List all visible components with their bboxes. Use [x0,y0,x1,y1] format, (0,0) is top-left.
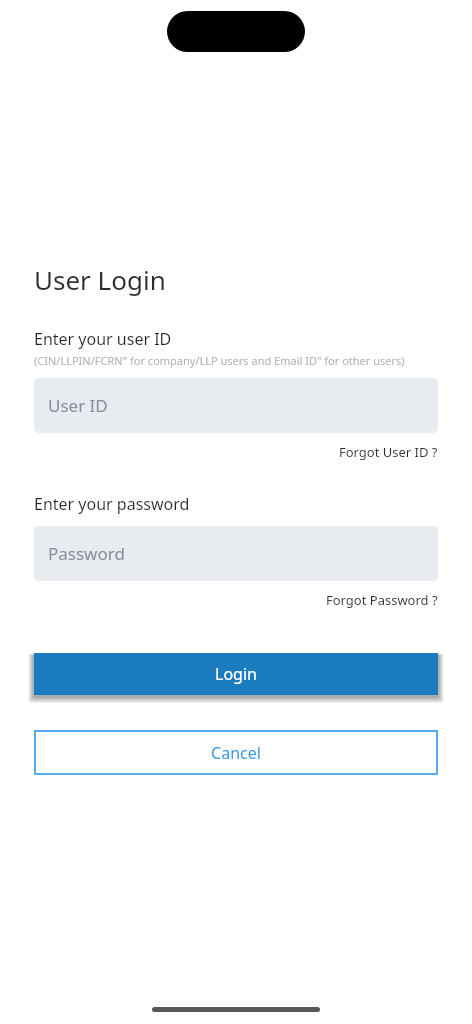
staticText: (CIN/LLPIN/FCRN" for company/LLP users a… [34,353,405,368]
button[interactable]: Forgot Password ? [324,589,440,611]
staticText: Login [215,663,257,685]
button[interactable]: User ID [34,378,438,433]
staticText: Enter your user ID [34,328,172,350]
staticText: Password [48,542,125,565]
staticText: User Login [34,262,166,297]
button[interactable]: Forgot User ID ? [337,441,440,463]
button[interactable]: Cancel [34,730,438,775]
staticText: User ID [48,394,108,417]
staticText: Cancel [211,742,261,764]
other: Home indicator [152,1007,320,1012]
staticText: Forgot Password ? [326,591,438,609]
button[interactable]: Login [34,653,438,695]
staticText: Forgot User ID ? [339,443,438,461]
staticText: Enter your password [34,493,190,515]
button[interactable]: Password [34,526,438,581]
